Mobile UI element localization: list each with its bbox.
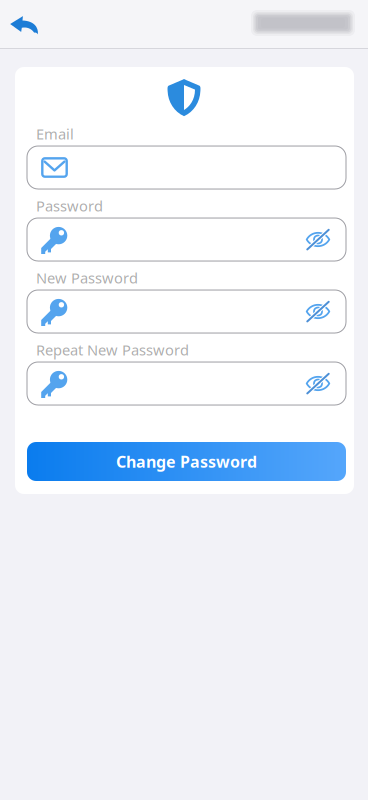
button[interactable]: Change Password	[27, 442, 346, 481]
button[interactable]: Show New Password	[296, 290, 340, 333]
staticText: New Password	[36, 268, 138, 287]
button[interactable]: Show Repeat New Password	[296, 362, 340, 405]
button[interactable]: Show Password	[296, 218, 340, 261]
button[interactable]: Title	[247, 6, 359, 40]
staticText: Change Password	[116, 451, 257, 472]
staticText: Password	[36, 196, 103, 215]
staticText: Email	[36, 124, 74, 143]
staticText: Repeat New Password	[36, 340, 189, 359]
button[interactable]: Back	[0, 0, 48, 48]
